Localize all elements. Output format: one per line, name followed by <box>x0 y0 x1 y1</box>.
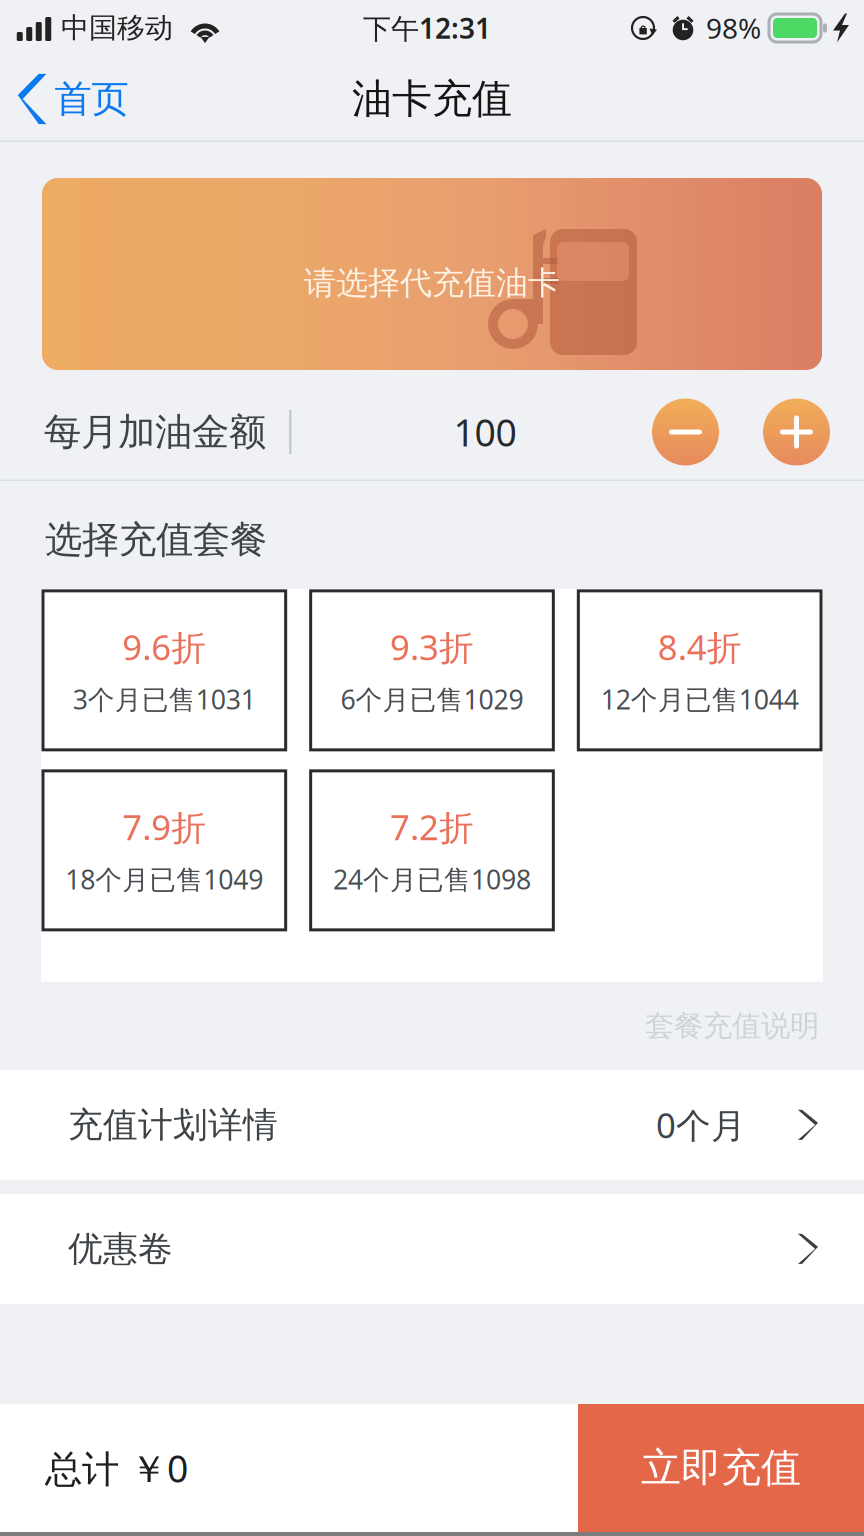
staticText: 0个月 <box>656 1102 746 1148</box>
staticText: 6个月已售1029 <box>340 681 523 717</box>
button[interactable]: 套餐充值说明 <box>645 998 864 1054</box>
staticText: 立即充值 <box>641 1443 801 1492</box>
button[interactable]: 8.4折 <box>578 591 821 750</box>
staticText: 9.3折 <box>390 624 474 670</box>
staticText: 3个月已售1031 <box>73 681 256 717</box>
button[interactable]: 9.6折 <box>43 591 286 750</box>
button[interactable]: 7.9折 <box>43 771 286 930</box>
button[interactable]: 7.2折 <box>311 771 553 930</box>
button[interactable]: 9.3折 <box>311 591 553 750</box>
staticText: 油卡充值 <box>352 74 512 123</box>
staticText: 总计 ￥0 <box>45 1443 188 1493</box>
staticText: 9.6折 <box>122 624 206 670</box>
button[interactable]: 返回首页 <box>0 66 128 132</box>
staticText: 每月加油金额 <box>44 409 266 455</box>
staticText: 7.9折 <box>122 804 206 850</box>
staticText: 请选择代充值油卡 <box>304 263 560 303</box>
button[interactable]: 请选择代充值油卡 <box>42 178 822 370</box>
staticText: 套餐充值说明 <box>645 1008 819 1044</box>
staticText: 首页 <box>54 76 128 122</box>
staticText: 7.2折 <box>390 804 474 850</box>
staticText: 选择充值套餐 <box>45 517 267 563</box>
button[interactable]: 充值计划详情 <box>0 1070 864 1180</box>
staticText: 12个月已售1044 <box>601 681 799 717</box>
staticText: 充值计划详情 <box>68 1104 278 1146</box>
staticText: 24个月已售1098 <box>333 861 531 897</box>
staticText: 98% <box>706 9 761 47</box>
button[interactable]: 增加 <box>763 398 830 465</box>
staticText: 8.4折 <box>658 624 742 670</box>
staticText: 下午12:31 <box>363 9 491 47</box>
staticText: 中国移动 <box>61 11 173 45</box>
button[interactable]: 减少 <box>652 398 719 465</box>
staticText: 100 <box>453 407 516 457</box>
staticText: 18个月已售1049 <box>65 861 263 897</box>
staticText: 优惠卷 <box>68 1228 173 1270</box>
button[interactable]: 优惠卷 <box>0 1194 864 1304</box>
button[interactable]: 立即充值 <box>578 1404 864 1532</box>
